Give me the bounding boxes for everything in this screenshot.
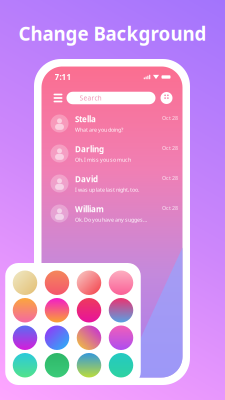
staticText: David (75, 174, 98, 184)
staticText: Stella (75, 114, 96, 124)
staticText: Change Background (18, 21, 206, 46)
staticText: Ok. Do you have any suggestion? (75, 216, 148, 223)
button[interactable]: Colour 12 (109, 325, 133, 350)
staticText: Oct 28 (162, 174, 178, 182)
staticText: Oct 28 (162, 144, 178, 152)
staticText: I was up late last night, too. (75, 186, 139, 193)
staticText: Search (79, 94, 101, 102)
button[interactable]: Search (66, 92, 155, 104)
button[interactable]: Stella (41, 108, 182, 138)
button[interactable]: William (41, 198, 182, 228)
staticText: William (75, 204, 104, 214)
button[interactable]: Colour 9 (13, 325, 37, 350)
button[interactable]: Colour 7 (77, 298, 101, 322)
button[interactable]: Colour 15 (77, 353, 101, 377)
staticText: Oct 28 (162, 204, 178, 212)
button[interactable]: Colour 10 (45, 325, 69, 350)
button[interactable]: Colour 13 (13, 353, 37, 377)
button[interactable]: Colour 5 (13, 298, 37, 322)
button[interactable]: Colour 3 (77, 270, 101, 295)
button[interactable]: Colour 11 (77, 325, 101, 350)
button[interactable]: Colour 14 (45, 353, 69, 377)
button[interactable]: David (41, 168, 182, 198)
button[interactable]: Menu (49, 90, 66, 105)
button[interactable]: Colour 4 (109, 270, 133, 295)
button[interactable]: Colour 8 (109, 298, 133, 322)
button[interactable]: Colour 2 (45, 270, 69, 295)
staticText: 7:11 (54, 72, 71, 82)
staticText: Oct 28 (162, 114, 178, 122)
button[interactable]: Theme (160, 92, 172, 104)
staticText: Oh, I miss you so much (75, 156, 131, 163)
button[interactable]: Darling (41, 138, 182, 168)
button[interactable]: Colour 6 (45, 298, 69, 322)
staticText: What are you doing? (75, 126, 123, 133)
staticText: Darling (75, 144, 104, 154)
button[interactable]: Colour 1 (13, 270, 37, 295)
button[interactable]: Colour 16 (109, 353, 133, 377)
